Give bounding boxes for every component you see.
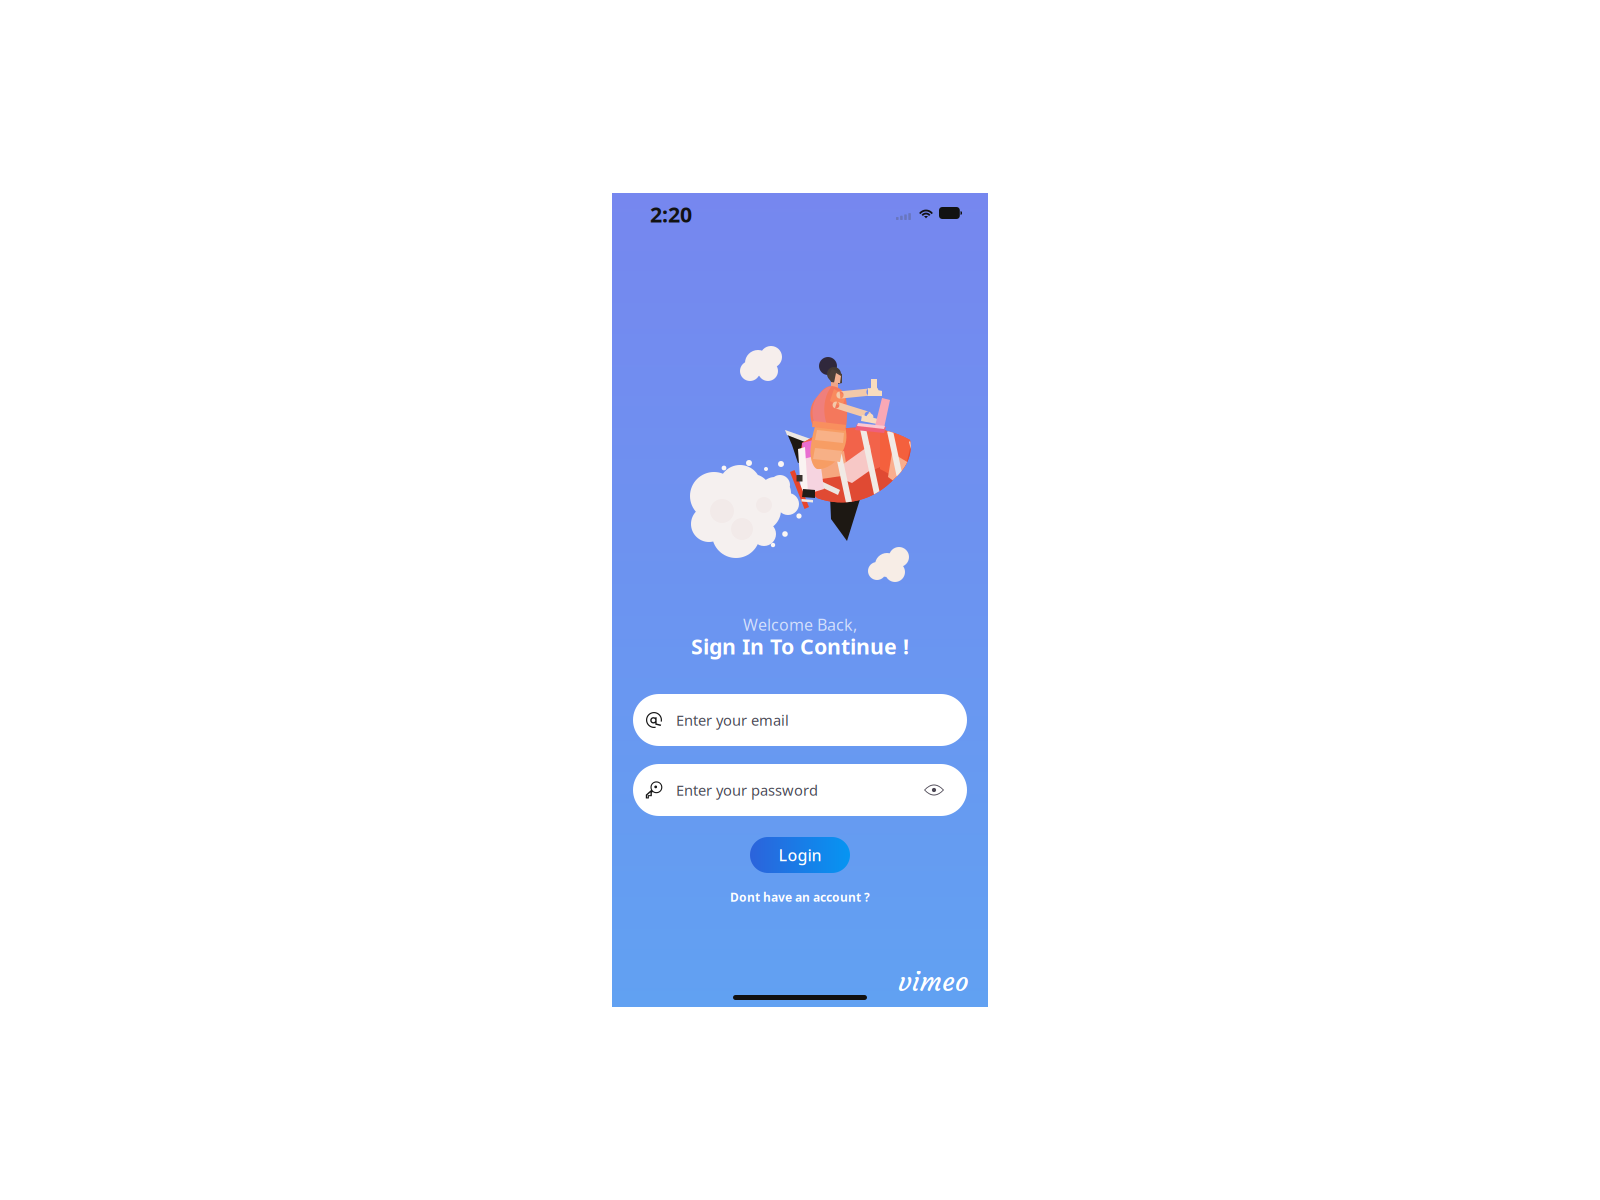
button[interactable]: Enter your email (633, 694, 967, 746)
staticText: Welcome Back, (743, 614, 857, 635)
button[interactable]: Login (750, 837, 850, 873)
staticText: 2:20 (650, 200, 692, 228)
staticText: Enter your email (676, 710, 789, 730)
staticText: vimeo (898, 965, 969, 998)
staticText: Enter your password (676, 780, 818, 800)
staticText: Login (778, 844, 821, 866)
button[interactable]: Enter your password (633, 764, 967, 816)
button[interactable]: Dont have an account ? (612, 888, 988, 906)
staticText: Dont have an account ? (730, 889, 870, 905)
staticText: Sign In To Continue ! (691, 632, 909, 660)
